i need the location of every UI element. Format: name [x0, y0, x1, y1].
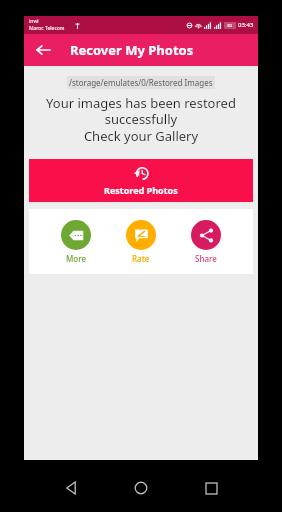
button[interactable]: Recent apps [187, 464, 235, 512]
staticText: Check your Gallery [24, 127, 258, 145]
button[interactable]: Home [117, 464, 165, 512]
button[interactable]: Share [189, 218, 223, 266]
staticText: Your images has been restored successful… [38, 94, 244, 127]
button[interactable]: Restored Photos [29, 159, 253, 202]
staticText: Maroc Telecom [29, 25, 65, 32]
staticText: Rate [132, 253, 150, 264]
button[interactable]: Back [32, 39, 54, 61]
staticText: inwi [29, 18, 39, 25]
staticText: Restored Photos [104, 184, 178, 196]
staticText: Share [195, 253, 217, 264]
staticText: Recover My Photos [70, 41, 194, 59]
staticText: 03:43 [238, 21, 254, 29]
button[interactable]: Rate [124, 218, 158, 266]
staticText: 3G [227, 23, 233, 28]
button[interactable]: Back [47, 464, 95, 512]
button[interactable]: More [59, 218, 93, 266]
staticText: More [66, 253, 87, 264]
staticText: /storage/emulates/0/Restored Images [69, 77, 213, 88]
